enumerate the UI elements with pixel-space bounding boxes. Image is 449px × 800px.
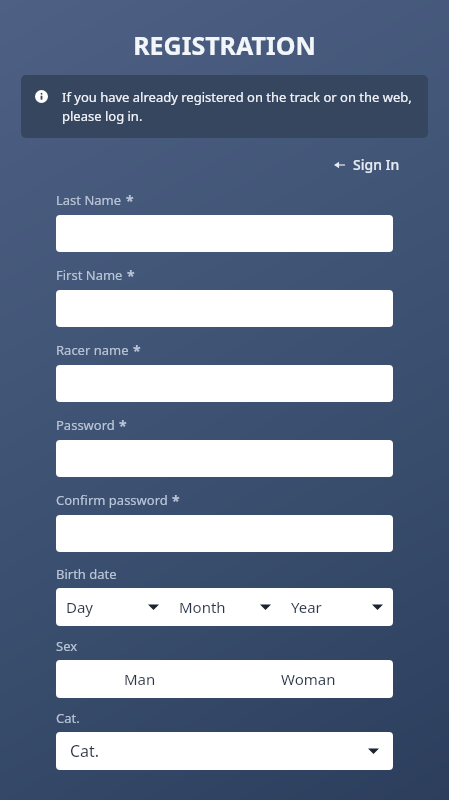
staticText: Cat. — [70, 740, 368, 762]
staticText: * — [172, 491, 180, 510]
staticText: Month — [179, 597, 260, 617]
staticText: * — [127, 266, 135, 285]
staticText: Man — [124, 669, 156, 689]
button[interactable]: Woman — [224, 660, 393, 698]
staticText: Year — [291, 597, 372, 617]
button[interactable] — [56, 290, 393, 327]
staticText: Woman — [281, 669, 336, 689]
staticText: Racer name — [56, 341, 129, 359]
button[interactable]: Day — [56, 588, 169, 626]
button[interactable]: Back — [330, 152, 404, 177]
staticText: Sign In — [353, 155, 400, 174]
staticText: Password — [56, 416, 115, 434]
button[interactable] — [56, 440, 393, 477]
staticText: Confirm password — [56, 491, 168, 509]
button[interactable]: Man — [56, 660, 224, 698]
button[interactable]: Month — [169, 588, 281, 626]
button[interactable] — [56, 515, 393, 552]
button[interactable]: Year — [281, 588, 393, 626]
staticText: Cat. — [56, 709, 80, 727]
button[interactable] — [56, 215, 393, 252]
staticText: Sex — [56, 637, 78, 655]
button[interactable]: Cat. — [56, 732, 393, 770]
staticText: Day — [66, 597, 148, 617]
staticText: If you have already registered on the tr… — [62, 88, 414, 125]
staticText: First Name — [56, 266, 123, 284]
staticText: Birth date — [56, 565, 117, 583]
button[interactable] — [56, 365, 393, 402]
other: Back — [334, 159, 346, 171]
staticText: Last Name — [56, 191, 122, 209]
staticText: REGISTRATION — [0, 28, 449, 62]
staticText: * — [126, 191, 134, 210]
staticText: * — [133, 341, 141, 360]
staticText: * — [119, 416, 127, 435]
